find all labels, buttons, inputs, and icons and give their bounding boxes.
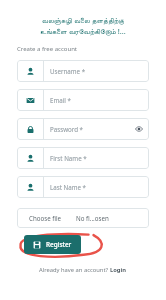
staticText: Register (46, 240, 72, 249)
staticText: Create a free account (17, 45, 78, 53)
staticText: Already have an account? (39, 266, 110, 274)
staticText: Last Name * (50, 183, 86, 191)
staticText: உங்களை வரவேற்கிறோம் !... (17, 26, 149, 36)
button[interactable]: Password * (17, 118, 149, 140)
button[interactable]: Register (24, 235, 81, 254)
staticText: Username * (50, 67, 86, 75)
button[interactable]: Email * (17, 89, 149, 111)
button[interactable]: Login (110, 266, 127, 274)
staticText: வலஞ்சுழி வலை தளத்திற்கு (17, 15, 149, 25)
staticText: Login (110, 266, 127, 274)
staticText: Choose file (29, 214, 62, 222)
staticText: First Name * (50, 154, 87, 162)
button[interactable]: Choose file (17, 208, 149, 228)
staticText: Password * (50, 125, 84, 133)
button[interactable]: Username * (17, 60, 149, 82)
button[interactable]: Last Name * (17, 176, 149, 198)
button[interactable]: Show password (129, 118, 149, 140)
button[interactable]: First Name * (17, 147, 149, 169)
staticText: No fi...osen (76, 214, 109, 222)
staticText: Email * (50, 96, 71, 104)
